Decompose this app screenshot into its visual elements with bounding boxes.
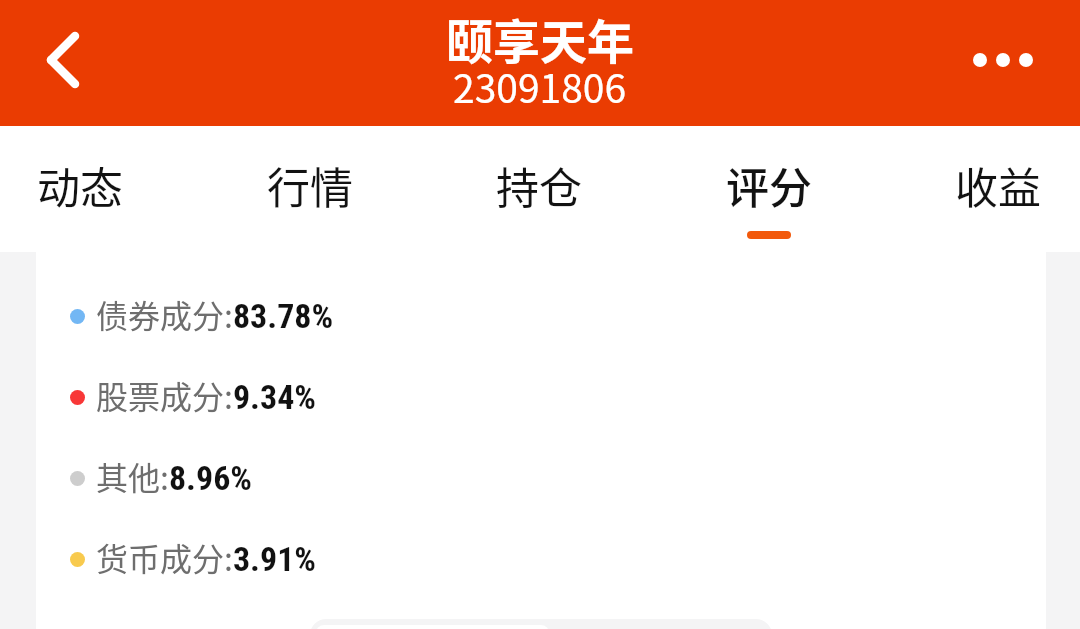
staticText: 持仓 [496, 154, 582, 216]
button[interactable]: 其他:8.96% [36, 438, 1046, 518]
button[interactable]: More options [960, 0, 1080, 126]
button[interactable]: 股票成分:9.34% [36, 357, 1046, 437]
button[interactable]: 动态 [0, 126, 194, 252]
button[interactable]: 行情 [195, 126, 424, 252]
staticText: 颐享天年 [446, 4, 634, 72]
staticText: 货币成分:3.91% [96, 534, 317, 580]
staticText: 股票成分:9.34% [96, 372, 317, 418]
staticText: 23091806 [453, 58, 627, 114]
button[interactable]: 评分 [654, 126, 883, 252]
button[interactable]: 债券成分:83.78% [36, 276, 1046, 356]
button[interactable]: 收益 [883, 126, 1080, 252]
staticText: 收益 [955, 154, 1041, 216]
staticText: 其他:8.96% [96, 453, 253, 499]
button[interactable]: 货币成分:3.91% [36, 519, 1046, 599]
button[interactable] [310, 619, 772, 629]
button[interactable]: 持仓 [424, 126, 653, 252]
button[interactable]: Back [0, 0, 110, 126]
staticText: 动态 [37, 154, 123, 216]
staticText: 评分 [726, 154, 812, 216]
staticText: 行情 [267, 154, 353, 216]
staticText: 债券成分:83.78% [96, 291, 334, 337]
